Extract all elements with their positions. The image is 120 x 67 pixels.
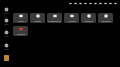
button[interactable]: Rail item 2 <box>0 30 12 38</box>
staticText: Settings <box>101 19 111 22</box>
button[interactable]: Camera <box>81 13 96 23</box>
button[interactable]: Rail item 3 <box>0 43 12 51</box>
button[interactable]: Screenshot <box>47 13 62 23</box>
staticText: item <box>4 35 9 38</box>
button[interactable]: Rail item 1 <box>0 18 12 26</box>
staticText: Screen <box>68 19 76 22</box>
button[interactable]: Screen <box>64 13 79 23</box>
button[interactable]: Timer <box>30 13 45 23</box>
staticText: Record <box>17 32 25 35</box>
staticText: item <box>4 48 9 51</box>
staticText: item <box>4 23 9 26</box>
staticText: Timer <box>34 19 41 22</box>
button[interactable]: Settings <box>98 13 113 23</box>
staticText: Screenshot <box>48 19 61 22</box>
button[interactable]: Record <box>13 26 28 36</box>
staticText: Camera <box>84 19 93 22</box>
button[interactable]: Save <box>13 13 28 23</box>
staticText: Save <box>18 19 24 22</box>
button[interactable]: Rail item 0 <box>0 7 12 15</box>
staticText: item <box>4 12 9 15</box>
button[interactable]: Rail item 4 <box>0 55 12 61</box>
